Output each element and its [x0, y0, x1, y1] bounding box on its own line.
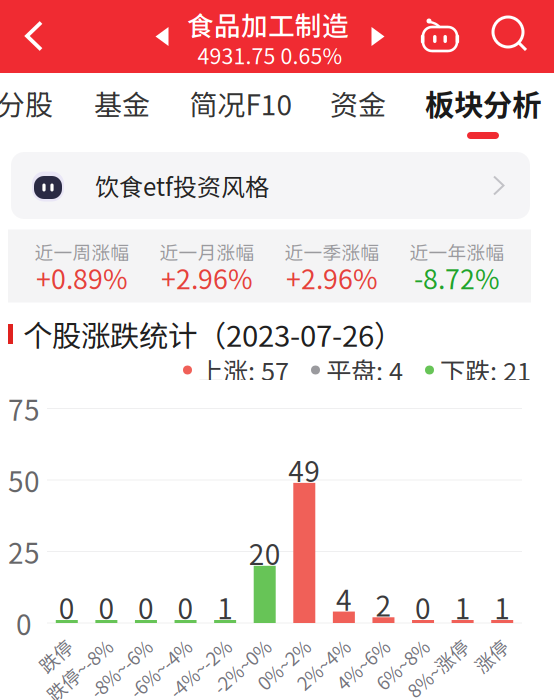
staticText: 0	[415, 587, 431, 627]
staticText: 6%~8%	[362, 629, 426, 656]
staticText: 分股	[0, 83, 53, 123]
staticText: 20	[249, 532, 281, 573]
staticText: 0	[16, 603, 32, 643]
staticText: 近一月涨幅	[159, 238, 254, 265]
staticText: 1	[494, 587, 510, 627]
staticText: 简况F10	[189, 83, 292, 123]
staticText: +2.96%	[161, 258, 253, 297]
staticText: 跌停	[32, 629, 70, 656]
staticText: +0.89%	[36, 258, 128, 297]
button[interactable]: Search	[482, 2, 540, 68]
staticText: 板块分析	[425, 82, 541, 124]
staticText: -4%~-2%	[152, 629, 228, 656]
button[interactable]: 饮食etf投资风格	[11, 152, 530, 219]
staticText: +2.96%	[286, 258, 378, 297]
staticText: 25	[8, 531, 40, 572]
staticText: 0	[177, 587, 193, 627]
staticText: 饮食etf投资风格	[95, 168, 269, 203]
staticText: 资金	[330, 83, 386, 123]
staticText: 近一季涨幅	[284, 238, 379, 265]
staticText: 1	[455, 587, 471, 627]
staticText: 50	[8, 460, 40, 500]
staticText: 个股涨跌统计（2023-07-26）	[23, 313, 403, 355]
staticText: 75	[8, 388, 40, 429]
staticText: 2%~4%	[283, 629, 347, 656]
staticText: -8%~-6%	[73, 629, 149, 656]
staticText: 8%~涨停	[391, 629, 466, 656]
staticText: 4	[336, 578, 352, 619]
button[interactable]: Assistant	[411, 1, 469, 67]
button[interactable]: 简况F10	[182, 73, 300, 138]
button[interactable]: 资金	[321, 73, 395, 138]
staticText: 1	[217, 587, 233, 627]
staticText: -2%~0%	[198, 629, 268, 656]
staticText: 近一周涨幅	[34, 238, 129, 265]
staticText: 基金	[94, 83, 150, 123]
button[interactable]: 基金	[85, 73, 159, 138]
staticText: 平盘: 4	[326, 352, 403, 388]
staticText: 0%~2%	[243, 629, 307, 656]
button[interactable]: Next sector	[356, 10, 400, 62]
staticText: 食品加工制造	[187, 5, 349, 43]
staticText: 0	[98, 587, 114, 627]
staticText: 0	[59, 587, 75, 627]
staticText: 4931.75 0.65%	[197, 40, 342, 70]
staticText: 4%~6%	[322, 629, 386, 656]
staticText: -8.72%	[414, 258, 500, 297]
staticText: 跌停~-8%	[28, 629, 109, 656]
staticText: 49	[288, 450, 320, 490]
button[interactable]: 板块分析	[420, 73, 546, 138]
button[interactable]: Previous sector	[140, 10, 184, 62]
staticText: 上涨: 57	[198, 352, 289, 388]
button[interactable]: 分股	[0, 73, 62, 138]
staticText: 涨停	[467, 629, 505, 656]
staticText: 近一年涨幅	[409, 238, 504, 265]
staticText: -6%~-4%	[112, 629, 188, 656]
staticText: 下跌: 21	[440, 352, 531, 388]
button[interactable]: Back	[4, 0, 64, 72]
staticText: 2	[375, 584, 391, 624]
staticText: 0	[138, 587, 154, 627]
